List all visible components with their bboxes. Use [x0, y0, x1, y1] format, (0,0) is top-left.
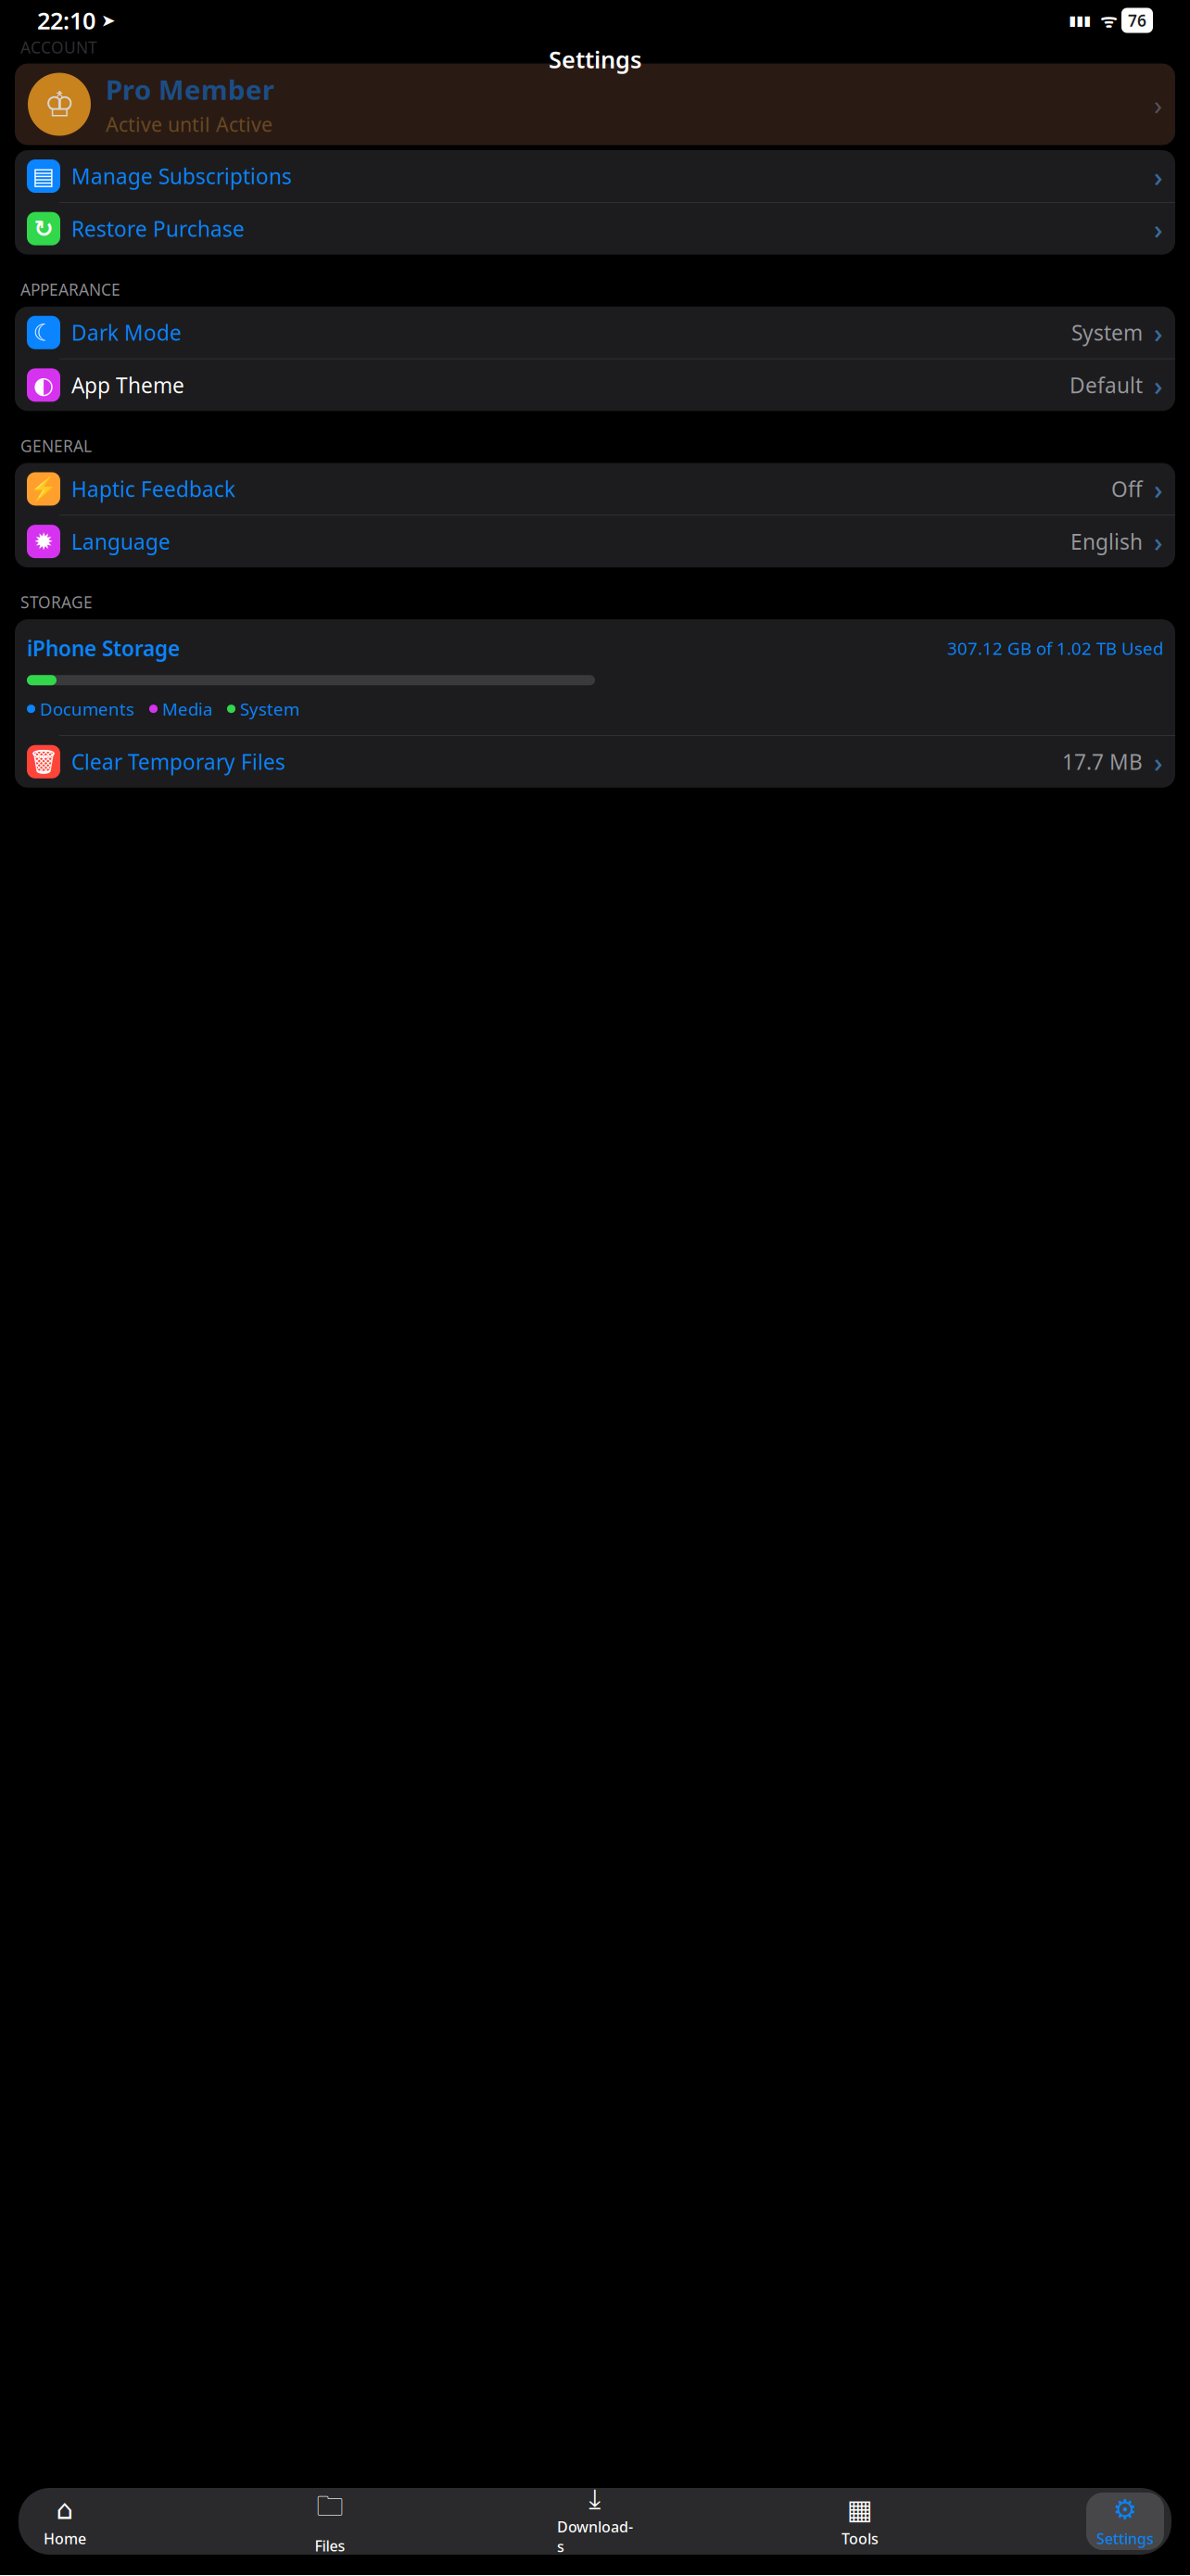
staticText: ↻: [34, 215, 53, 242]
staticText: ☾: [33, 319, 54, 346]
staticText: App Theme: [71, 371, 184, 399]
staticText: Language: [71, 528, 171, 555]
staticText: STORAGE: [20, 591, 93, 613]
staticText: ᯤ: [1091, 8, 1121, 33]
staticText: ⌂: [56, 2494, 74, 2525]
staticText: ▤: [32, 163, 55, 189]
staticText: Pro Member: [106, 71, 274, 107]
button[interactable]: ⌂: [26, 2493, 104, 2550]
staticText: Tools: [842, 2529, 879, 2548]
staticText: 307.12 GB of 1.02 TB Used: [947, 637, 1163, 660]
staticText: Clear Temporary Files: [71, 748, 285, 776]
button[interactable]: ♔: [0, 63, 1190, 145]
staticText: ›: [1154, 744, 1163, 780]
staticText: 🗑: [29, 748, 58, 775]
staticText: ⤓: [589, 2487, 601, 2513]
staticText: Restore Purchase: [71, 215, 245, 243]
staticText: ›: [1154, 367, 1163, 403]
staticText: Off: [1111, 475, 1143, 503]
button[interactable]: ▤: [15, 150, 1175, 202]
staticText: ✹: [34, 528, 53, 555]
staticText: 76: [1128, 10, 1146, 31]
staticText: ▮▮▮: [1069, 13, 1091, 28]
staticText: ›: [1154, 158, 1163, 194]
staticText: iPhone Storage: [27, 634, 180, 662]
staticText: Manage Subscriptions: [71, 162, 292, 190]
button[interactable]: ◐: [15, 359, 1175, 411]
staticText: ›: [1154, 471, 1163, 507]
staticText: 17.7 MB: [1062, 748, 1143, 776]
button[interactable]: ▦: [821, 2493, 899, 2550]
staticText: ⚡: [29, 476, 58, 502]
staticText: Media: [162, 697, 212, 720]
staticText: APPEARANCE: [20, 279, 120, 300]
staticText: ›: [1154, 211, 1163, 247]
staticText: Haptic Feedback: [71, 475, 235, 503]
button[interactable]: ⤓: [556, 2493, 634, 2550]
staticText: ›: [1154, 314, 1163, 351]
staticText: Home: [44, 2529, 86, 2548]
staticText: Downloads: [557, 2517, 633, 2556]
staticText: ACCOUNT: [20, 37, 97, 58]
staticText: ♔: [44, 85, 75, 124]
button[interactable]: 🗑: [15, 736, 1175, 788]
button[interactable]: ⚡: [15, 463, 1175, 515]
staticText: ⚙: [1113, 2494, 1137, 2525]
button[interactable]: 🗀: [291, 2493, 369, 2550]
staticText: Documents: [40, 697, 134, 720]
staticText: Settings: [549, 44, 641, 75]
staticText: English: [1070, 528, 1143, 555]
staticText: ◐: [33, 372, 54, 398]
button[interactable]: ☾: [15, 307, 1175, 358]
staticText: Dark Mode: [71, 319, 182, 346]
staticText: System: [240, 697, 299, 720]
staticText: System: [1071, 319, 1143, 346]
staticText: 🗀: [316, 2487, 343, 2532]
button[interactable]: ↻: [15, 203, 1175, 255]
staticText: Files: [315, 2536, 345, 2556]
button[interactable]: iPhone Storage: [15, 619, 1175, 735]
staticText: 22:10: [37, 5, 95, 36]
staticText: GENERAL: [20, 435, 92, 456]
staticText: ➤: [95, 11, 116, 30]
staticText: Settings: [1096, 2529, 1154, 2548]
button[interactable]: ⚙: [1086, 2493, 1164, 2550]
staticText: Active until Active: [106, 111, 272, 137]
button[interactable]: ✹: [15, 515, 1175, 567]
staticText: ›: [1154, 86, 1162, 122]
staticText: ▦: [847, 2494, 873, 2525]
staticText: Default: [1070, 371, 1143, 399]
staticText: ›: [1154, 523, 1163, 560]
